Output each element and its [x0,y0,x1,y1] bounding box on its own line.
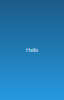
staticText: Hello [26,46,38,54]
